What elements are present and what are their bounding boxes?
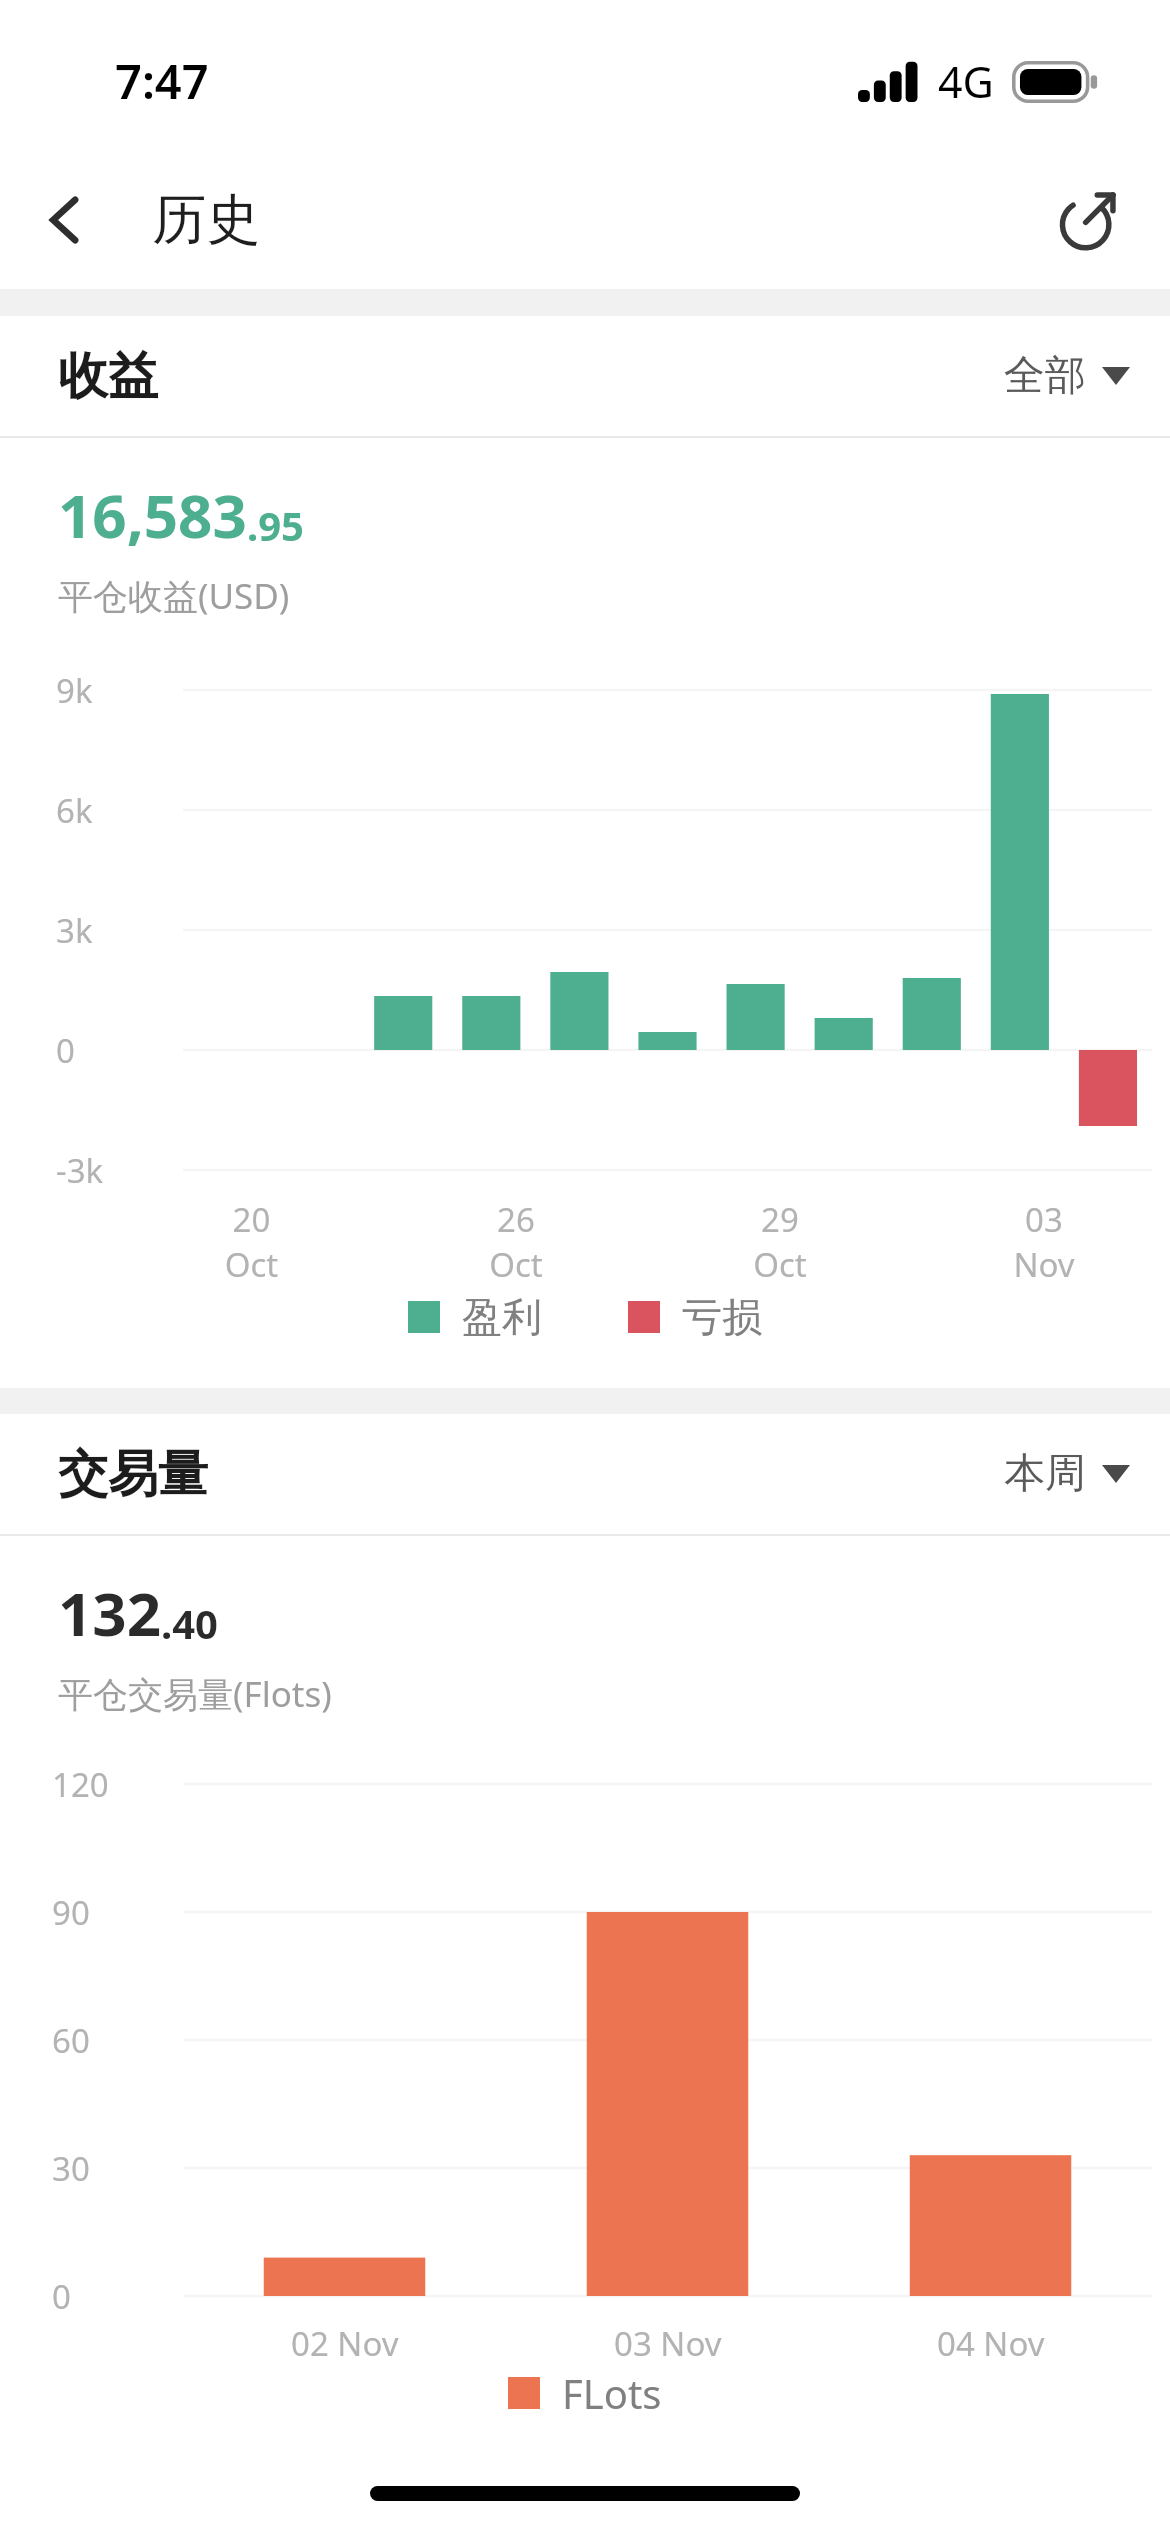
staticText: 历史 — [152, 186, 260, 254]
button[interactable]: Back — [18, 172, 114, 268]
staticText: .40 — [161, 1596, 218, 1650]
staticText: FLots — [562, 2366, 662, 2420]
staticText: 交易量 — [58, 1443, 208, 1506]
staticText: 7:47 — [115, 49, 209, 113]
staticText: 90 — [52, 1890, 90, 1935]
staticText: 26 Oct — [472, 1197, 560, 1287]
staticText: 04 Nov — [937, 2321, 1045, 2366]
button[interactable]: 全部 — [1004, 350, 1130, 402]
button[interactable]: FLots — [508, 2366, 662, 2420]
staticText: 亏损 — [682, 1292, 762, 1342]
staticText: 03 Nov — [1000, 1197, 1088, 1287]
staticText: -3k — [56, 1148, 104, 1193]
staticText: 平仓交易量(Flots) — [58, 1670, 332, 1718]
staticText: 9k — [56, 668, 93, 713]
staticText: 120 — [52, 1762, 109, 1807]
staticText: 30 — [52, 2146, 90, 2191]
staticText: 4G — [938, 52, 994, 111]
staticText: 平仓收益(USD) — [58, 572, 290, 620]
staticText: 本周 — [1004, 1448, 1086, 1500]
staticText: 29 Oct — [736, 1197, 824, 1287]
staticText: 0 — [52, 2274, 71, 2319]
button[interactable]: Share — [1040, 172, 1136, 268]
button[interactable]: 亏损 — [628, 1292, 762, 1342]
staticText: 3k — [56, 908, 93, 953]
staticText: 03 Nov — [614, 2321, 722, 2366]
staticText: 全部 — [1004, 350, 1086, 402]
staticText: 6k — [56, 788, 93, 833]
staticText: 132 — [58, 1572, 161, 1654]
staticText: .95 — [247, 498, 304, 552]
button[interactable]: 本周 — [1004, 1448, 1130, 1500]
staticText: 0 — [56, 1028, 75, 1073]
staticText: 16,583 — [58, 474, 247, 556]
staticText: 盈利 — [462, 1292, 542, 1342]
staticText: 收益 — [58, 345, 158, 408]
button[interactable]: 盈利 — [408, 1292, 542, 1342]
staticText: 60 — [52, 2018, 90, 2063]
staticText: 20 Oct — [207, 1197, 296, 1287]
staticText: 02 Nov — [291, 2321, 399, 2366]
